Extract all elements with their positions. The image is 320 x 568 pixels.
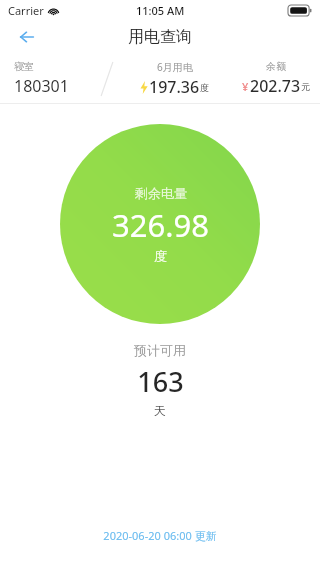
- button[interactable]: 2020-06-20 06:00 更新: [97, 525, 223, 546]
- button[interactable]: 预计可用: [0, 342, 320, 418]
- staticText: 2020-06-20 06:00 更新: [103, 528, 217, 543]
- staticText: 余额: [266, 60, 286, 73]
- staticText: 6月用电: [157, 60, 193, 74]
- staticText: 163: [137, 363, 184, 400]
- staticText: 剩余电量: [135, 185, 187, 201]
- button[interactable]: 余额: [242, 60, 310, 97]
- staticText: 用电查询: [128, 27, 192, 47]
- staticText: 度: [200, 82, 209, 93]
- staticText: Carrier: [8, 3, 44, 18]
- button[interactable]: Back: [8, 20, 44, 54]
- staticText: 180301: [14, 75, 69, 97]
- staticText: 天: [154, 403, 166, 418]
- staticText: ¥: [242, 79, 249, 94]
- staticText: 11:05 AM: [136, 3, 185, 18]
- staticText: 197.36: [149, 76, 200, 98]
- staticText: 元: [301, 81, 310, 92]
- staticText: 预计可用: [134, 342, 186, 358]
- staticText: 326.98: [112, 204, 209, 246]
- staticText: 寝室: [14, 60, 34, 73]
- button[interactable]: 6月用电: [140, 60, 209, 98]
- staticText: 度: [154, 248, 167, 264]
- button[interactable]: 剩余电量: [60, 124, 260, 324]
- button[interactable]: 寝室: [14, 60, 69, 97]
- staticText: 202.73: [250, 75, 301, 97]
